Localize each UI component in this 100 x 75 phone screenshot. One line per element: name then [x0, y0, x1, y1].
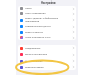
staticText: Настройки [41, 1, 56, 5]
staticText: Экран и яркость [25, 31, 44, 34]
button[interactable]: Экран и яркость [18, 29, 76, 35]
staticText: Фокусирование [25, 60, 43, 63]
staticText: Универсальный доступ [25, 25, 51, 28]
staticText: Звуки и тактильные [25, 53, 48, 56]
staticText: Экран «Домой» и библиотека [25, 17, 58, 20]
button[interactable]: Экран «Домой» и библиотека [18, 16, 76, 24]
button[interactable]: Звуки и тактильные [18, 51, 76, 58]
button[interactable]: Уведомления [18, 45, 76, 51]
staticText: Уведомления [25, 47, 41, 50]
button[interactable]: Фокусирование [18, 58, 76, 64]
button[interactable]: Универсальный доступ [18, 24, 76, 29]
staticText: Пункт управления [25, 12, 46, 15]
button[interactable]: Экранное время [18, 64, 76, 70]
staticText: приложений [25, 20, 40, 23]
staticText: Apple Intelligence и Siri [25, 36, 51, 39]
button[interactable]: Apple Intelligence и Siri [18, 35, 76, 40]
button[interactable]: Пункт управления [18, 11, 76, 16]
staticText: Поиск [25, 7, 32, 10]
button[interactable]: Поиск [18, 6, 76, 11]
staticText: Экранное время [25, 66, 44, 69]
